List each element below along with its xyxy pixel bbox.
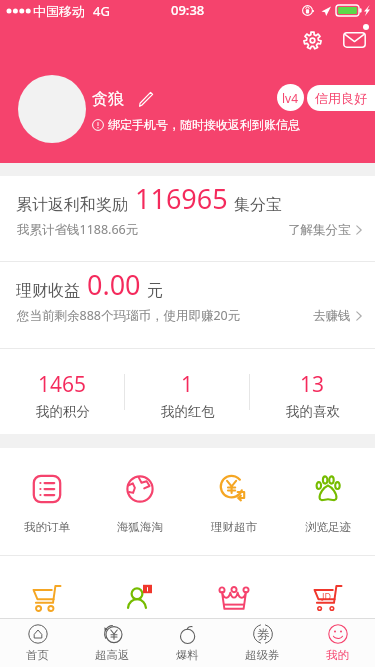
staticText: 09:38 (171, 1, 205, 19)
button[interactable]: Edit name (138, 91, 155, 108)
staticText: 绑定手机号，随时接收返利到账信息 (108, 117, 300, 132)
staticText: 我的红包 (161, 403, 215, 420)
staticText: 浏览足迹 (305, 520, 351, 534)
button[interactable]: 我的订单 (0, 448, 93, 555)
staticText: 首页 (26, 648, 49, 662)
staticText: 去赚钱 (313, 308, 351, 324)
button[interactable]: 券 (225, 619, 300, 667)
staticText: 超高返 (95, 648, 130, 662)
staticText: 您当前剩余888个玛瑙币，使用即赚20元 (17, 307, 241, 324)
staticText: 贪狼 (92, 89, 124, 109)
staticText: 京东 (317, 629, 340, 643)
button[interactable]: 首页 (0, 619, 75, 667)
staticText: 爆料 (176, 648, 199, 662)
button[interactable]: 会员中心 (187, 556, 281, 663)
staticText: 信用良好 (315, 90, 367, 106)
staticText: 0.00 (87, 266, 141, 303)
staticText: 我的积分 (36, 403, 90, 420)
button[interactable]: 了解集分宝 (288, 222, 362, 238)
staticText: 理财收益 (16, 281, 80, 301)
staticText: 4G (93, 2, 110, 20)
button[interactable]: 浏览足迹 (281, 448, 375, 555)
staticText: 元 (147, 281, 163, 301)
button[interactable]: 海狐海淘 (93, 448, 187, 555)
staticText: 海狐海淘 (117, 520, 163, 534)
button[interactable]: 理财收益 (0, 262, 375, 348)
staticText: 我的喜欢 (286, 403, 340, 420)
staticText: 邀请好友 (117, 629, 163, 643)
staticText: 我累计省钱1188.66元 (17, 221, 139, 238)
button[interactable]: 1 (125, 349, 250, 434)
staticText: lv4 (282, 90, 299, 106)
staticText: JD (322, 590, 332, 602)
button[interactable]: 信用良好 (307, 85, 375, 111)
staticText: 了解集分宝 (288, 222, 351, 238)
button[interactable]: JD (281, 556, 375, 663)
button[interactable]: 超高返 (75, 619, 150, 667)
button[interactable]: 邀请好友 (93, 556, 187, 663)
staticText: 券 (257, 626, 270, 642)
button[interactable]: 爆料 (150, 619, 225, 667)
button[interactable]: lv4 (277, 84, 304, 111)
button[interactable]: 13 (250, 349, 375, 434)
staticText: 我的 (326, 648, 349, 662)
staticText: 中国移动 (33, 3, 85, 19)
button[interactable]: 理财超市 (187, 448, 281, 555)
button[interactable]: 购物车 (0, 556, 93, 663)
button[interactable]: 1465 (0, 349, 125, 434)
staticText: 我的订单 (24, 520, 70, 534)
staticText: 1 (181, 370, 194, 399)
staticText: 会员中心 (211, 629, 257, 643)
staticText: 1465 (38, 370, 87, 399)
button[interactable]: Avatar (18, 75, 86, 143)
button[interactable]: 累计返利和奖励 (0, 176, 375, 261)
staticText: 集分宝 (234, 195, 282, 215)
staticText: 累计返利和奖励 (16, 195, 128, 215)
staticText: 13 (300, 370, 325, 399)
button[interactable]: Settings (295, 23, 329, 57)
button[interactable]: Messages (337, 23, 371, 57)
button[interactable]: 我的 (300, 619, 375, 667)
staticText: 超级券 (245, 648, 280, 662)
staticText: 理财超市 (211, 520, 257, 534)
staticText: 116965 (135, 180, 228, 217)
staticText: 购物车 (29, 629, 64, 643)
button[interactable]: 去赚钱 (313, 308, 362, 324)
